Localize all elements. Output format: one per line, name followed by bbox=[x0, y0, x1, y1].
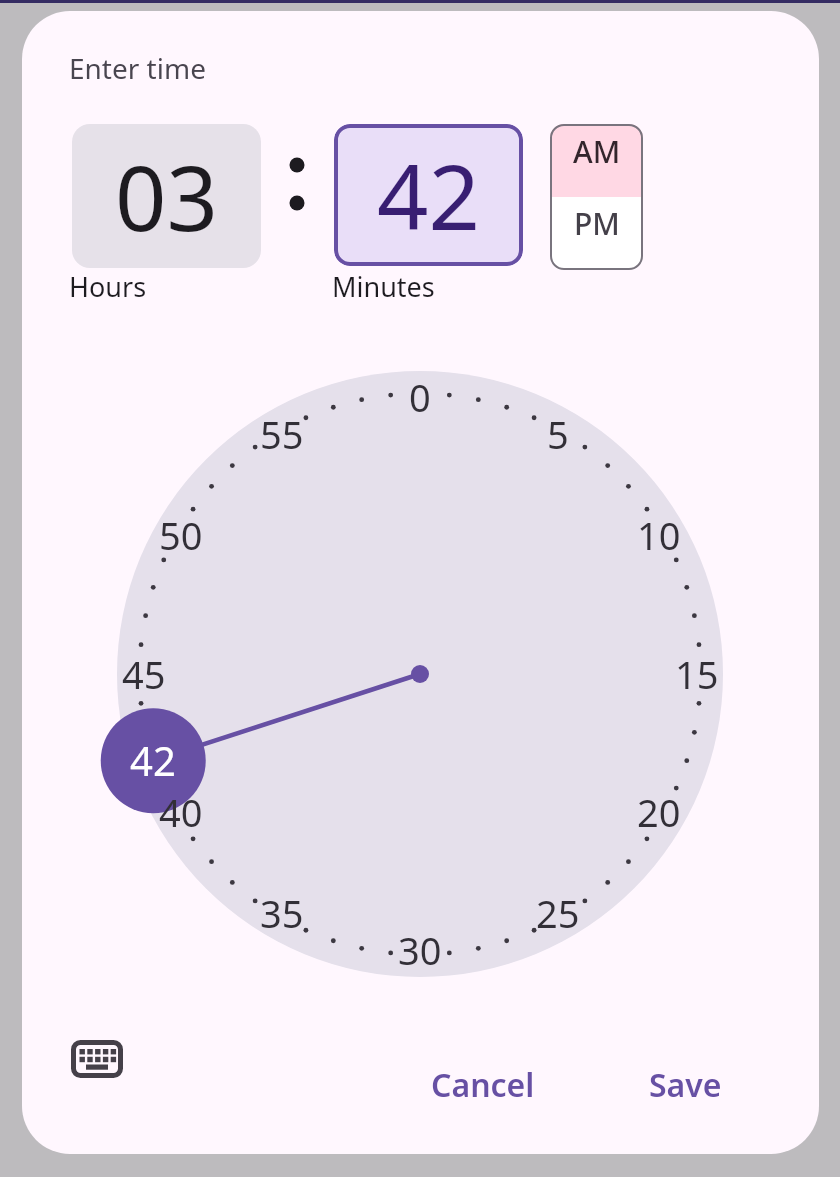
button[interactable] bbox=[61, 1023, 133, 1095]
staticText: 5 bbox=[547, 408, 569, 460]
button[interactable]: 03 bbox=[72, 124, 261, 268]
staticText: 30 bbox=[398, 924, 442, 976]
staticText: 10 bbox=[637, 509, 681, 561]
staticText: 0 bbox=[409, 371, 431, 423]
button[interactable]: 42 bbox=[334, 124, 523, 266]
staticText: 42 bbox=[377, 134, 480, 257]
staticText: Hours bbox=[69, 268, 147, 305]
staticText: 20 bbox=[637, 786, 681, 838]
button[interactable]: Cancel bbox=[413, 1057, 553, 1113]
staticText: 42 bbox=[130, 733, 176, 787]
staticText: 15 bbox=[675, 648, 719, 700]
staticText: 55 bbox=[260, 408, 304, 460]
staticText: 40 bbox=[159, 786, 203, 838]
staticText: 45 bbox=[122, 648, 166, 700]
staticText: Save bbox=[649, 1063, 722, 1107]
staticText: Enter time bbox=[69, 49, 206, 87]
staticText: 50 bbox=[159, 509, 203, 561]
staticText: 35 bbox=[260, 887, 304, 939]
staticText: 03 bbox=[115, 135, 218, 258]
staticText: Cancel bbox=[431, 1063, 535, 1107]
button[interactable] bbox=[550, 197, 643, 270]
staticText: 25 bbox=[536, 887, 580, 939]
button[interactable]: Save bbox=[625, 1057, 745, 1113]
staticText: PM bbox=[574, 203, 620, 244]
button[interactable] bbox=[550, 124, 643, 197]
staticText: AM bbox=[573, 131, 621, 172]
staticText: Minutes bbox=[332, 268, 435, 305]
